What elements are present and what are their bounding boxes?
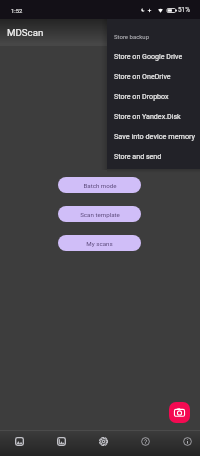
button[interactable]: Info: [177, 431, 197, 451]
staticText: My scans: [86, 240, 113, 247]
staticText: Store backup: [114, 33, 150, 40]
button[interactable]: Save into device memory: [107, 126, 200, 146]
button[interactable]: Store and send: [107, 146, 200, 166]
staticText: MDScan: [7, 27, 44, 38]
staticText: Store and send: [114, 152, 162, 160]
button[interactable]: Settings: [93, 431, 113, 451]
button[interactable]: Batch scans: [51, 431, 71, 451]
button[interactable]: Store backup: [107, 26, 200, 46]
staticText: Store on OneDrive: [114, 72, 171, 80]
button[interactable]: Store on Yandex.Disk: [107, 106, 200, 126]
staticText: Batch mode: [83, 182, 117, 189]
button[interactable]: Scan template: [58, 206, 141, 222]
button[interactable]: Store on Dropbox: [107, 86, 200, 106]
staticText: Save into device memory: [114, 132, 196, 141]
button[interactable]: My scans: [58, 235, 141, 251]
staticText: Scan template: [80, 211, 120, 218]
button[interactable]: Store on Google Drive: [107, 46, 200, 66]
button[interactable]: Store on OneDrive: [107, 66, 200, 86]
button[interactable]: Gallery: [9, 431, 29, 451]
button[interactable]: MDScan: [0, 19, 200, 46]
staticText: 1:52: [11, 8, 23, 15]
staticText: 51%: [178, 6, 190, 14]
staticText: Store on Yandex.Disk: [114, 112, 181, 120]
button[interactable]: Scan document: [169, 402, 190, 423]
staticText: Store on Google Drive: [114, 52, 183, 60]
button[interactable]: Batch mode: [58, 177, 141, 193]
staticText: Store on Dropbox: [114, 92, 169, 100]
button[interactable]: Help: [135, 431, 155, 451]
